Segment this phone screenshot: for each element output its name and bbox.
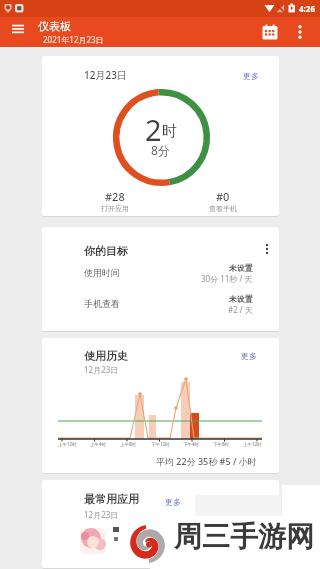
staticText: 最常用应用 [84,492,139,506]
button[interactable] [259,21,281,43]
staticText: 下午12时 [151,441,170,447]
staticText: 12月23日 [84,509,119,520]
button[interactable]: 更多 [241,351,257,361]
staticText: 30分 11秒 / 天 [201,273,253,284]
staticText: 查看手机 [209,204,237,213]
staticText: 上午4时 [90,441,107,447]
button[interactable]: 12月23日 [42,56,279,216]
button[interactable]: 更多 [243,71,259,81]
staticText: 上午8时 [120,441,137,447]
button[interactable] [290,22,310,42]
staticText: #0 [216,189,230,204]
button[interactable]: 更多 [165,497,181,507]
staticText: 仪表板 [38,19,71,33]
staticText: 2 [145,110,162,149]
button[interactable] [257,239,277,259]
staticText: #2 / 天 [228,304,253,315]
staticText: 时 [162,122,177,141]
staticText: 12月23日 [84,68,127,82]
staticText: 4:26 [299,3,315,14]
staticText: #28 [105,189,125,204]
button[interactable]: 使用历史 [42,338,279,473]
staticText: 打开应用 [101,204,129,213]
button[interactable] [7,21,29,43]
staticText: 手机查看 [84,298,120,309]
staticText: 上午12时 [243,441,262,447]
staticText: 2021年12月23日 [43,34,104,45]
button[interactable]: 你的目标 [42,227,279,331]
staticText: 平均 22分 35秒 #5 / 小时 [156,455,257,467]
staticText: 8分 [151,142,170,158]
staticText: 12月23日 [84,364,119,375]
staticText: 下午4时 [183,441,200,447]
staticText: 下午8时 [213,441,230,447]
staticText: 未设置 [229,263,253,273]
staticText: 上午12时 [58,441,77,447]
staticText: 周三手游网 [174,519,314,554]
staticText: 使用历史 [84,349,128,363]
staticText: 使用时间 [84,267,120,278]
staticText: 你的目标 [84,244,128,258]
staticText: 未设置 [229,294,253,304]
button[interactable]: 最常用应用 [42,480,279,568]
